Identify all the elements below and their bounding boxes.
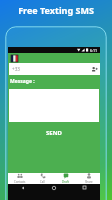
staticText: SEND <box>46 129 62 137</box>
button[interactable]: Country: France <box>11 55 18 62</box>
button[interactable]: Back <box>8 184 38 200</box>
button[interactable]: Contacts <box>8 173 31 184</box>
button[interactable]: Call <box>31 173 54 184</box>
button[interactable]: Home <box>38 184 69 200</box>
button[interactable]: Recents <box>69 184 100 200</box>
button[interactable]: Draft <box>54 173 77 184</box>
button[interactable]: Pick contact <box>91 66 98 73</box>
button[interactable]: +33 <box>9 63 100 75</box>
button[interactable]: Share <box>77 173 100 184</box>
staticText: 6:11 <box>90 48 98 53</box>
staticText: Message : <box>10 78 35 85</box>
staticText: Draft <box>62 180 69 184</box>
staticText: Share <box>85 180 93 184</box>
staticText: Free Texting SMS <box>0 4 112 16</box>
button[interactable]: SEND <box>8 127 100 139</box>
staticText: +33 <box>12 66 20 72</box>
staticText: Contacts <box>14 180 26 184</box>
staticText: Call <box>40 180 45 184</box>
